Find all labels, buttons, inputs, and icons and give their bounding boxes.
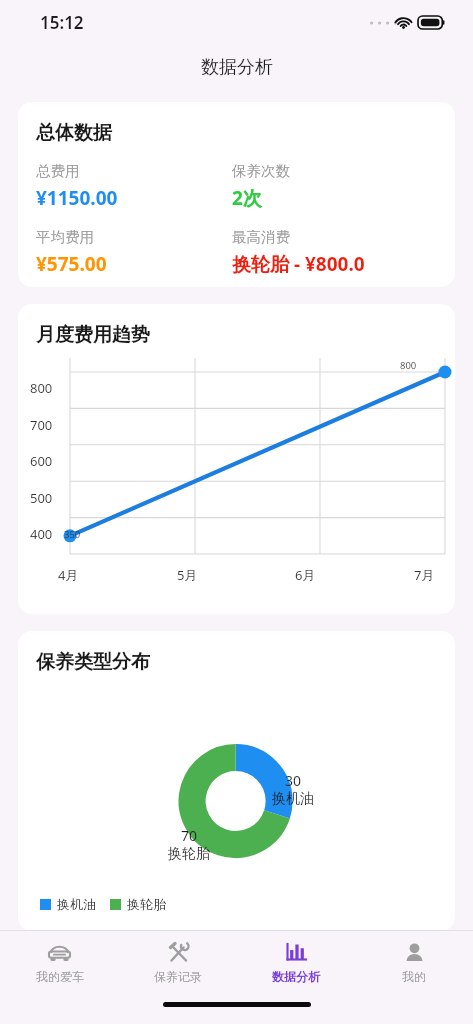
staticText: 换轮胎 - ¥800.0 bbox=[232, 251, 365, 277]
staticText: 我的 bbox=[402, 969, 426, 984]
staticText: 数据分析 bbox=[201, 56, 273, 79]
staticText: 换轮胎 bbox=[168, 845, 210, 863]
staticText: 70 bbox=[181, 826, 198, 845]
staticText: 4月 bbox=[58, 566, 79, 584]
staticText: 6月 bbox=[295, 566, 316, 584]
staticText: 30 bbox=[285, 771, 302, 790]
button[interactable]: 我的爱车 bbox=[0, 931, 119, 993]
button[interactable]: 数据分析 bbox=[237, 931, 355, 993]
staticText: 350 bbox=[64, 528, 81, 541]
staticText: 15:12 bbox=[40, 11, 84, 34]
staticText: 月度费用趋势 bbox=[36, 323, 150, 347]
other: 保养记录 bbox=[166, 940, 191, 965]
staticText: 总体数据 bbox=[36, 121, 112, 145]
staticText: 7月 bbox=[414, 566, 435, 584]
button[interactable]: 保养记录 bbox=[119, 931, 237, 993]
staticText: 5月 bbox=[177, 566, 198, 584]
staticText: 最高消费 bbox=[232, 228, 290, 246]
button[interactable]: 我的 bbox=[355, 931, 473, 993]
staticText: 保养类型分布 bbox=[36, 650, 150, 674]
staticText: 我的爱车 bbox=[36, 969, 84, 984]
staticText: 保养记录 bbox=[154, 969, 202, 984]
staticText: ¥1150.00 bbox=[36, 185, 118, 211]
staticText: 换轮胎 bbox=[127, 896, 166, 912]
staticText: 数据分析 bbox=[272, 969, 320, 984]
staticText: 600 bbox=[30, 452, 53, 470]
other: 我的爱车 bbox=[47, 940, 72, 965]
other: 数据分析 bbox=[284, 940, 309, 965]
staticText: 800 bbox=[400, 359, 417, 372]
staticText: 500 bbox=[30, 489, 53, 507]
staticText: 700 bbox=[30, 416, 53, 434]
staticText: 总费用 bbox=[36, 162, 80, 180]
staticText: 换机油 bbox=[272, 790, 314, 808]
staticText: ¥575.00 bbox=[36, 251, 107, 277]
staticText: 换机油 bbox=[57, 896, 96, 912]
staticText: 2次 bbox=[232, 185, 262, 211]
staticText: 保养次数 bbox=[232, 162, 290, 180]
other: 我的 bbox=[402, 940, 427, 965]
staticText: 平均费用 bbox=[36, 228, 94, 246]
staticText: 800 bbox=[30, 379, 53, 397]
staticText: 400 bbox=[30, 525, 53, 543]
